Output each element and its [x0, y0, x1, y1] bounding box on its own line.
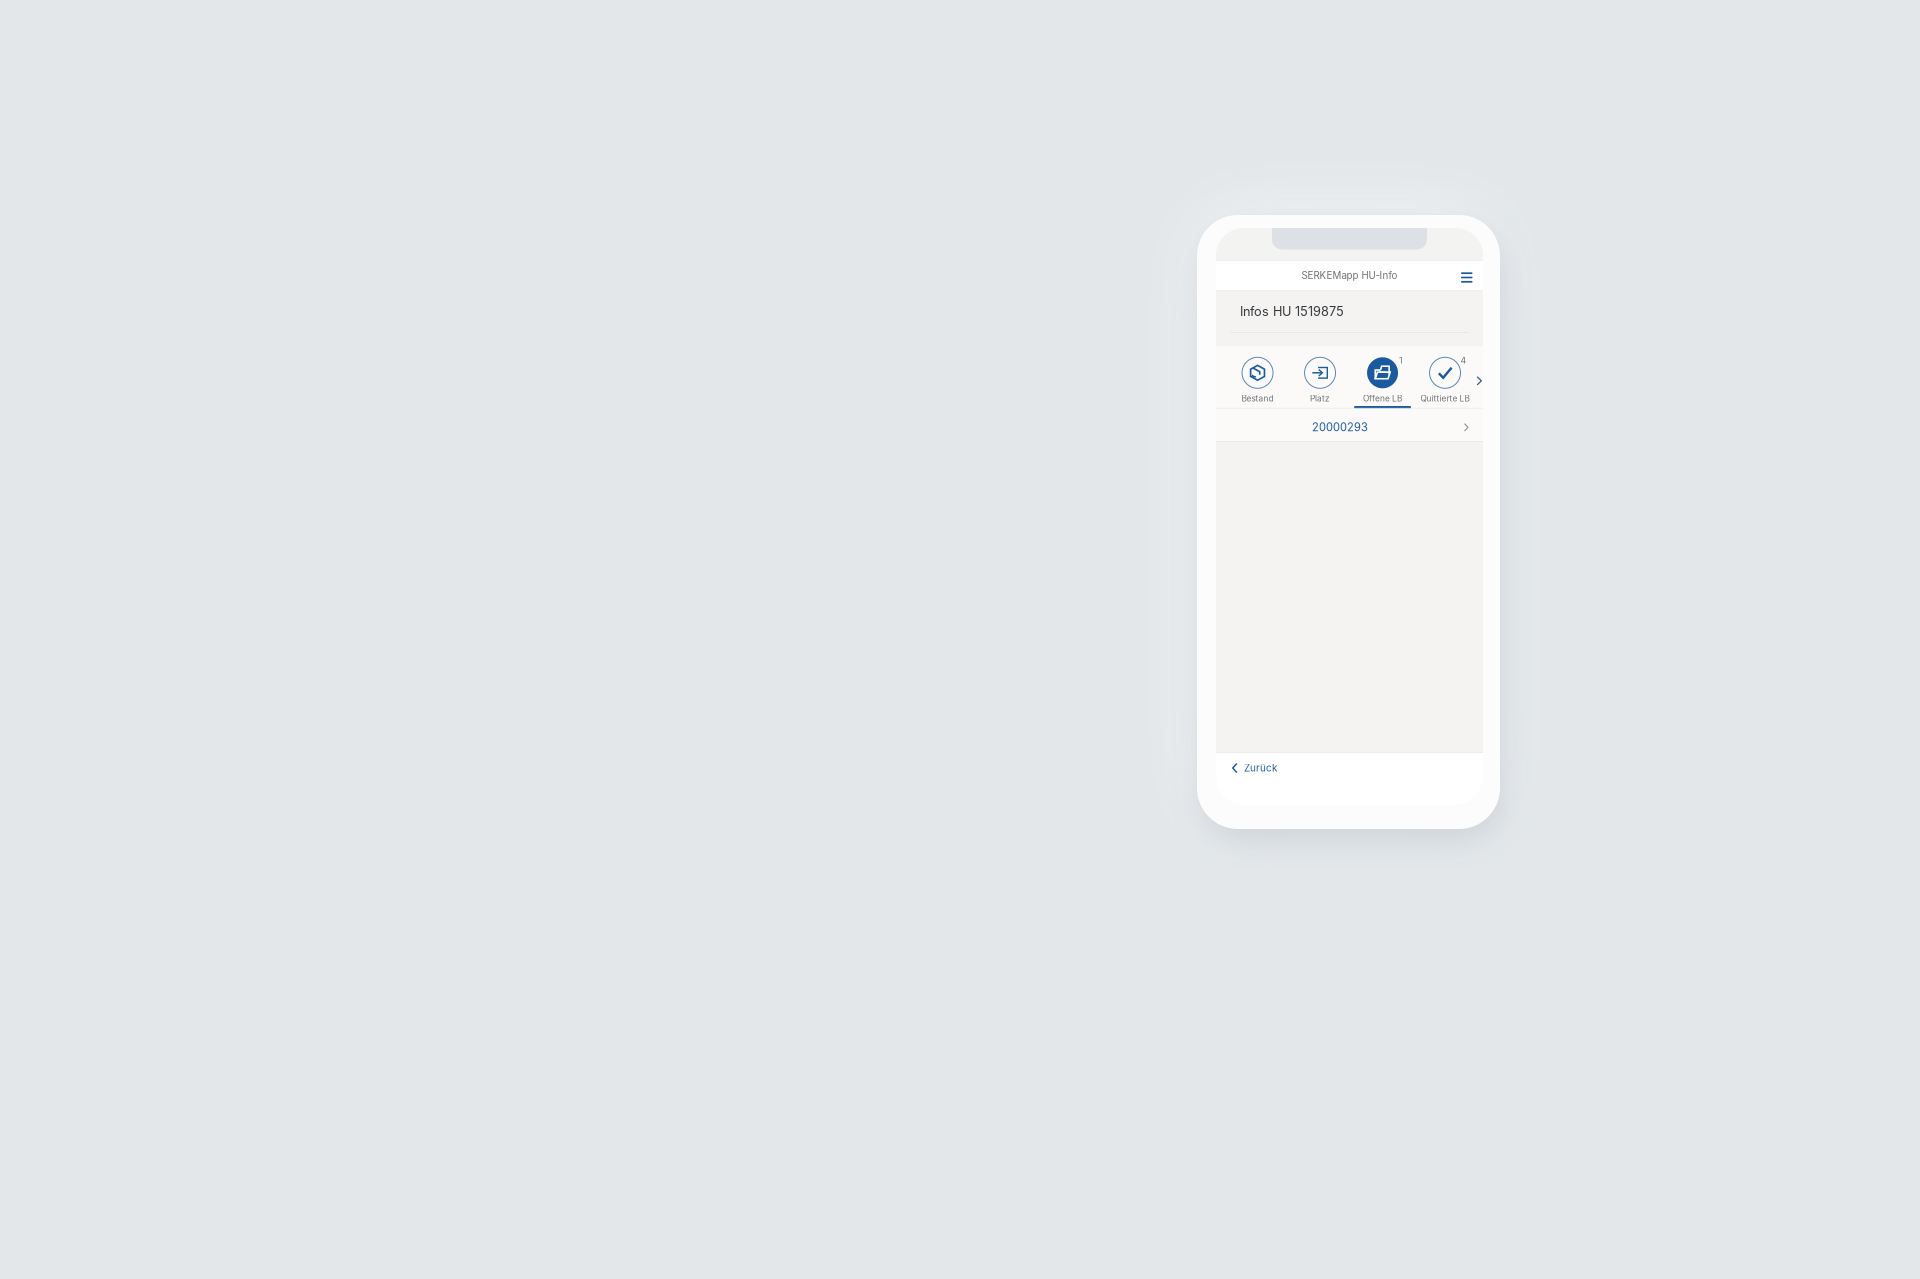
- staticText: Zurück: [1244, 762, 1277, 774]
- staticText: Infos HU 1519875: [1240, 304, 1344, 319]
- button[interactable]: Zurück: [1216, 757, 1293, 779]
- staticText: SERKEMapp HU-Info: [1301, 270, 1397, 281]
- staticText: 1: [1399, 355, 1403, 366]
- staticText: Platz: [1310, 394, 1330, 404]
- button[interactable]: Platz: [1289, 346, 1351, 409]
- staticText: Quittierte LB: [1420, 394, 1469, 404]
- staticText: 4: [1460, 355, 1466, 366]
- staticText: 20000293: [1312, 421, 1368, 434]
- staticText: Offene LB: [1363, 394, 1402, 404]
- staticText: Bestand: [1241, 394, 1273, 404]
- button[interactable]: 4: [1414, 346, 1476, 409]
- button[interactable]: Bestand: [1226, 346, 1289, 409]
- button[interactable]: Menü: [1454, 261, 1479, 290]
- button[interactable]: 1: [1351, 346, 1414, 409]
- button[interactable]: 20000293: [1216, 409, 1483, 442]
- button[interactable]: Weitere Reiter anzeigen: [1475, 366, 1483, 389]
